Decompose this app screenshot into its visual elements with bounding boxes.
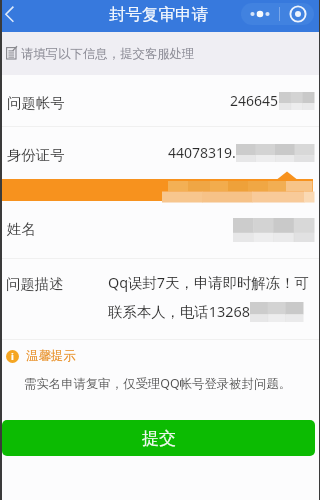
staticText: Qq误封7天，申请即时解冻！可 [108,273,310,293]
staticText: 问题描述 [6,275,64,293]
button[interactable]: 问题帐号 [2,75,319,126]
staticText: 246645 [230,91,279,110]
staticText: i [11,350,14,363]
staticText: 联系本人，电话13268 [108,302,250,322]
staticText: 封号复审申请 [109,4,208,25]
staticText: 问题帐号 [7,94,65,112]
staticText: 提交 [142,428,176,449]
staticText: 姓名 [7,220,36,238]
button[interactable]: More options [241,3,314,25]
staticText: 温馨提示 [26,348,76,364]
staticText: 44078319. [168,143,236,162]
button[interactable]: Back [2,0,24,32]
button[interactable]: 身份证号 [2,127,319,178]
staticText: 身份证号 [7,146,65,164]
button[interactable]: 问题描述 [2,259,319,339]
staticText: 请填写以下信息，提交客服处理 [21,46,195,62]
staticText: 需实名申请复审，仅受理QQ帐号登录被封问题。 [24,375,292,392]
button[interactable]: 姓名 [2,202,319,258]
button[interactable]: 提交 [2,420,315,456]
